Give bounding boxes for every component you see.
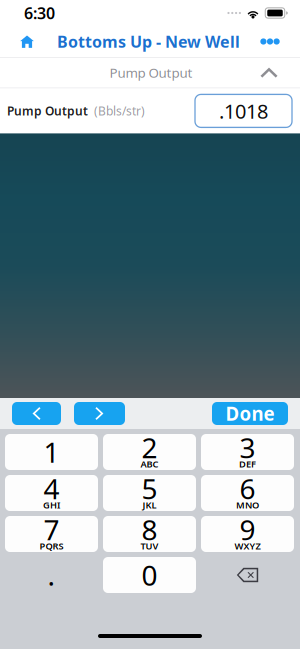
staticText: 9 bbox=[239, 511, 255, 548]
staticText: Done bbox=[225, 401, 274, 426]
button[interactable]: 6 bbox=[201, 475, 294, 511]
staticText: TUV bbox=[140, 540, 158, 552]
button[interactable]: . bbox=[5, 557, 98, 593]
staticText: WXYZ bbox=[234, 540, 260, 552]
button[interactable]: Previous field bbox=[12, 402, 61, 425]
staticText: 3 bbox=[239, 429, 255, 466]
staticText: Pump Output bbox=[109, 64, 192, 81]
staticText: 8 bbox=[141, 511, 157, 548]
button[interactable]: 2 bbox=[103, 434, 196, 470]
button[interactable]: .1018 bbox=[195, 94, 292, 127]
button[interactable]: Delete bbox=[201, 557, 294, 593]
button[interactable]: 7 bbox=[5, 516, 98, 552]
staticText: (Bbls/str) bbox=[94, 103, 145, 119]
button[interactable]: Done bbox=[212, 402, 288, 425]
button[interactable]: 9 bbox=[201, 516, 294, 552]
staticText: 1 bbox=[43, 433, 59, 471]
staticText: GHI bbox=[43, 499, 60, 511]
staticText: 2 bbox=[141, 429, 157, 466]
staticText: JKL bbox=[142, 499, 156, 511]
button[interactable]: 4 bbox=[5, 475, 98, 511]
staticText: Bottoms Up - New Well bbox=[57, 31, 240, 52]
button[interactable]: Next field bbox=[74, 402, 125, 425]
staticText: 7 bbox=[43, 511, 59, 548]
staticText: Pump Output bbox=[7, 103, 88, 119]
button[interactable]: 1 bbox=[5, 434, 98, 470]
button[interactable]: Collapse Pump Output bbox=[253, 58, 285, 88]
staticText: 4 bbox=[43, 470, 59, 507]
staticText: PQRS bbox=[39, 540, 63, 552]
staticText: 5 bbox=[141, 470, 157, 507]
button[interactable]: 5 bbox=[103, 475, 196, 511]
button[interactable]: 0 bbox=[103, 557, 196, 593]
button[interactable]: 8 bbox=[103, 516, 196, 552]
button[interactable]: Home bbox=[10, 26, 44, 57]
staticText: .1018 bbox=[219, 98, 268, 124]
staticText: 6:30 bbox=[24, 2, 55, 24]
staticText: MNO bbox=[236, 499, 259, 511]
staticText: . bbox=[47, 556, 55, 594]
button[interactable]: 3 bbox=[201, 434, 294, 470]
staticText: DEF bbox=[239, 458, 256, 470]
button[interactable]: More options bbox=[253, 26, 287, 57]
staticText: 0 bbox=[141, 556, 157, 594]
staticText: ABC bbox=[140, 458, 158, 470]
staticText: 6 bbox=[239, 470, 255, 507]
